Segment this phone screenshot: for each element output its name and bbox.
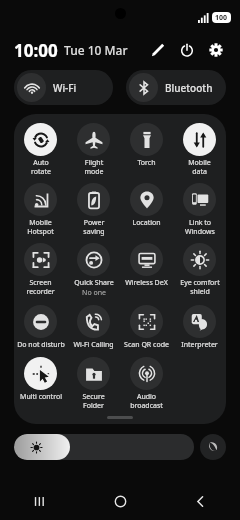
button[interactable]: Screen recorder <box>14 241 67 298</box>
button[interactable]: Secure Folder <box>67 355 120 412</box>
staticText: Multi control <box>20 392 62 402</box>
button[interactable]: Bluetooth <box>126 70 226 105</box>
staticText: Tue 10 Mar <box>64 42 128 58</box>
button[interactable]: Audio broadcast <box>120 355 173 412</box>
staticText: Power saving <box>83 218 105 236</box>
button[interactable]: Edit <box>145 37 171 63</box>
staticText: Mobile Hotspot <box>27 218 54 236</box>
button[interactable]: Wireless DeX <box>120 241 173 290</box>
staticText: Secure Folder <box>82 392 105 410</box>
button[interactable]: Location <box>120 181 173 230</box>
button[interactable]: Link to Windows <box>173 181 226 238</box>
staticText: Quick Share <box>74 278 114 288</box>
staticText: Torch <box>137 158 156 168</box>
staticText: Link to Windows <box>185 218 215 236</box>
button[interactable]: Power saving <box>67 181 120 238</box>
button[interactable]: Quick Share <box>67 241 120 300</box>
button[interactable]: Interpreter <box>173 303 226 352</box>
button[interactable]: Settings <box>203 37 229 63</box>
button[interactable]: Auto rotate <box>14 121 67 178</box>
staticText: Wi-Fi <box>53 81 77 95</box>
button[interactable]: Scan QR code <box>120 303 173 352</box>
button[interactable]: Multi control <box>14 355 67 404</box>
staticText: Do not disturb <box>17 340 65 350</box>
staticText: Flight mode <box>84 158 104 176</box>
staticText: Screen recorder <box>26 278 55 296</box>
button[interactable]: Eye comfort shield <box>173 241 226 298</box>
button[interactable]: Wi-Fi Calling <box>67 303 120 352</box>
button[interactable]: Mobile data <box>173 121 226 178</box>
button[interactable]: Power <box>174 37 200 63</box>
button[interactable]: Flight mode <box>67 121 120 178</box>
staticText: Scan QR code <box>124 340 169 350</box>
staticText: Bluetooth <box>165 81 213 95</box>
button[interactable]: Wi-Fi <box>14 70 113 105</box>
button[interactable]: Dark mode <box>200 434 226 460</box>
button[interactable]: Torch <box>120 121 173 170</box>
staticText: Auto rotate <box>31 158 51 176</box>
button[interactable]: Recents <box>0 486 80 516</box>
staticText: 100 <box>215 13 228 23</box>
staticText: Wireless DeX <box>125 278 168 288</box>
staticText: Interpreter <box>181 340 218 350</box>
staticText: Eye comfort shield <box>180 278 220 296</box>
staticText: Wi-Fi Calling <box>73 340 114 350</box>
button[interactable]: Mobile Hotspot <box>14 181 67 238</box>
staticText: No one <box>82 288 106 298</box>
staticText: Audio broadcast <box>130 392 163 410</box>
button[interactable]: Brightness <box>14 434 194 460</box>
button[interactable]: Do not disturb <box>14 303 67 352</box>
staticText: Location <box>132 218 161 228</box>
staticText: 10:00 <box>14 39 58 62</box>
button[interactable]: Home <box>80 486 160 516</box>
staticText: Mobile data <box>188 158 211 176</box>
button[interactable]: Back <box>160 486 240 516</box>
